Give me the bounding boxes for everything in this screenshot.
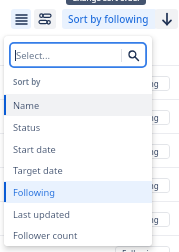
- button[interactable]: Last updated: [4, 203, 152, 225]
- button[interactable]: List view: [11, 9, 31, 29]
- staticText: Select...: [16, 49, 51, 62]
- button[interactable]: Name: [4, 94, 152, 116]
- button[interactable]: Following: [115, 212, 170, 227]
- button[interactable]: Start date: [4, 138, 152, 160]
- staticText: Following: [122, 248, 159, 252]
- button[interactable]: Following: [115, 144, 170, 159]
- button[interactable]: Select...: [9, 42, 147, 68]
- staticText: Following: [122, 146, 159, 157]
- button[interactable]: Following: [115, 110, 170, 125]
- button[interactable]: Following: [115, 76, 170, 91]
- staticText: Start date: [13, 143, 56, 156]
- button[interactable]: Timeline view: [34, 9, 56, 29]
- staticText: Following: [122, 214, 159, 225]
- button[interactable]: Sort by following: [62, 9, 157, 29]
- staticText: Following: [13, 186, 55, 199]
- staticText: Name: [13, 99, 40, 112]
- staticText: Change sort order: [72, 0, 141, 3]
- button[interactable]: Sort descending: [155, 9, 178, 29]
- button[interactable]: Following: [115, 246, 170, 252]
- staticText: Target date: [13, 164, 63, 177]
- staticText: Following: [122, 180, 159, 191]
- staticText: Status: [13, 121, 41, 134]
- button[interactable]: Status: [4, 116, 152, 138]
- button[interactable]: Follower count: [4, 224, 152, 246]
- staticText: Follower count: [13, 229, 78, 242]
- staticText: Last updated: [13, 208, 71, 221]
- button[interactable]: Following: [4, 181, 152, 203]
- staticText: Following: [122, 78, 159, 89]
- staticText: Sort by following: [68, 12, 149, 26]
- button[interactable]: Following: [115, 178, 170, 193]
- button[interactable]: Target date: [4, 159, 152, 181]
- staticText: Sort by: [13, 76, 41, 87]
- staticText: Following: [122, 112, 159, 123]
